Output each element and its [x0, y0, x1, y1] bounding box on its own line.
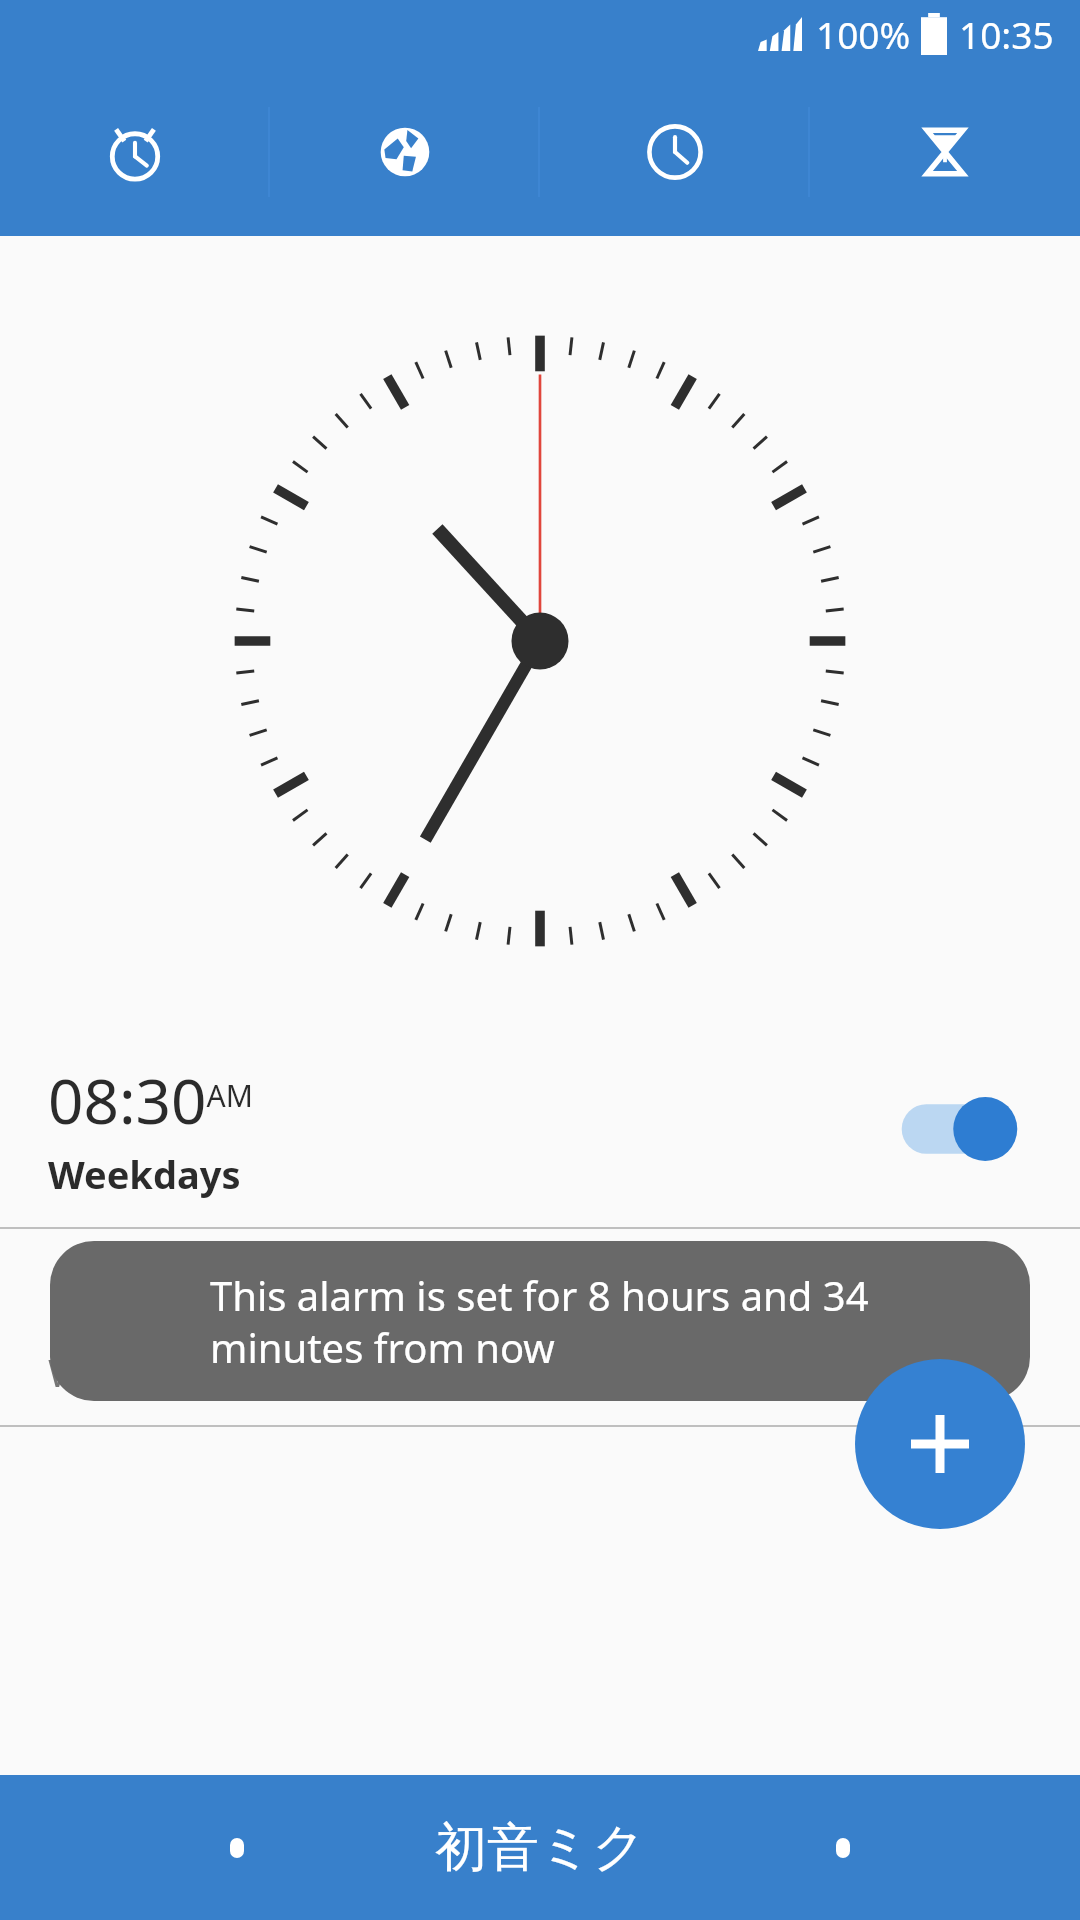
staticText: 09:00AM — [48, 1256, 253, 1340]
button[interactable]: Stopwatch — [540, 68, 810, 236]
button[interactable]: Add alarm — [855, 1359, 1025, 1529]
button[interactable]: World clock — [270, 68, 540, 236]
staticText: 100% — [816, 9, 911, 59]
staticText: 10:35 — [959, 9, 1054, 59]
staticText: This alarm is set for 8 hours and 34 min… — [210, 1268, 869, 1375]
button[interactable]: Alarm on — [890, 1089, 1020, 1169]
button[interactable]: Alarm off — [890, 1287, 1020, 1367]
staticText: 08:30AM — [48, 1058, 253, 1142]
button[interactable]: Alarm — [0, 68, 270, 236]
button[interactable]: Timer — [810, 68, 1080, 236]
staticText: 初音ミク — [435, 1815, 646, 1881]
button[interactable]: 08:30AM — [0, 1031, 1080, 1227]
button[interactable]: 09:00AM — [0, 1229, 1080, 1425]
staticText: Weekdays — [48, 1148, 241, 1200]
staticText: Weekends — [48, 1346, 233, 1398]
